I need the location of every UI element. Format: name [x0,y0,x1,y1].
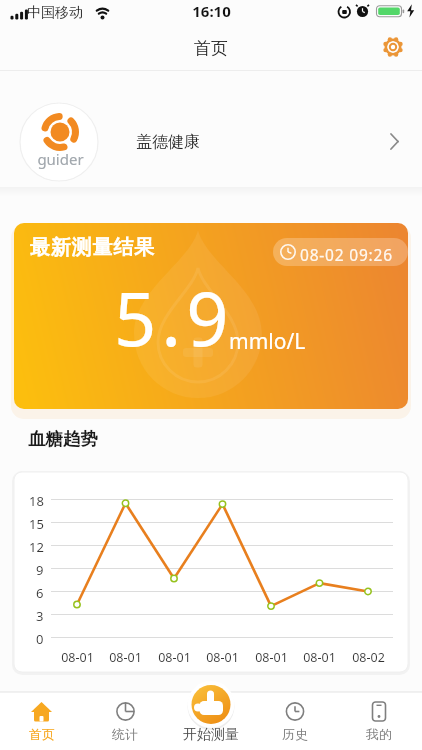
staticText: 血糖趋势 [28,428,98,450]
staticText: 历史 [282,726,308,742]
button[interactable] [265,694,325,746]
button[interactable] [349,694,409,746]
staticText: 最新测量结果 [30,235,155,260]
button[interactable] [12,694,72,746]
staticText: 9 [36,561,44,579]
button[interactable] [0,92,422,192]
staticText: 我的 [366,726,392,742]
button[interactable] [14,223,408,409]
button[interactable] [187,681,235,729]
staticText: 08-01 [109,649,142,666]
staticText: 3 [36,607,44,625]
staticText: 18 [29,492,44,510]
staticText: 08-02 [352,649,385,666]
staticText: 08-01 [61,649,94,666]
staticText: 08-01 [158,649,191,666]
staticText: 首页 [29,726,55,742]
staticText: 开始测量 [183,726,239,744]
staticText: 12 [29,538,44,556]
staticText: 08-02 09:26 [300,244,393,265]
staticText: guider [37,149,84,169]
staticText: 08-01 [206,649,239,666]
staticText: 盖德健康 [136,132,200,152]
staticText: 08-01 [303,649,336,666]
staticText: 中国移动 [27,4,83,22]
button[interactable] [14,472,408,672]
staticText: 统计 [112,726,138,742]
staticText: 08-01 [255,649,288,666]
staticText: 16:10 [192,1,231,21]
staticText: mmlo/L [229,327,306,356]
staticText: 首页 [194,38,228,59]
staticText: 6 [36,584,44,602]
staticText: 15 [29,515,44,533]
button[interactable] [378,32,410,64]
staticText: 0 [36,630,44,648]
staticText: 5.9 [114,267,234,368]
button[interactable] [95,694,155,746]
